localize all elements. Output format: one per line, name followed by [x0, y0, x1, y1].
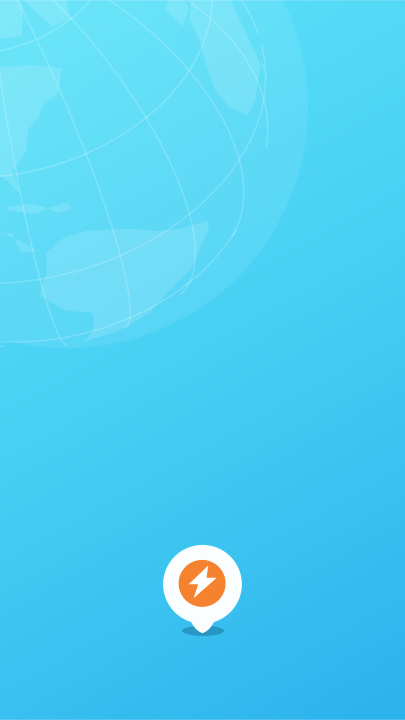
button[interactable]: App logo: [142, 524, 262, 644]
